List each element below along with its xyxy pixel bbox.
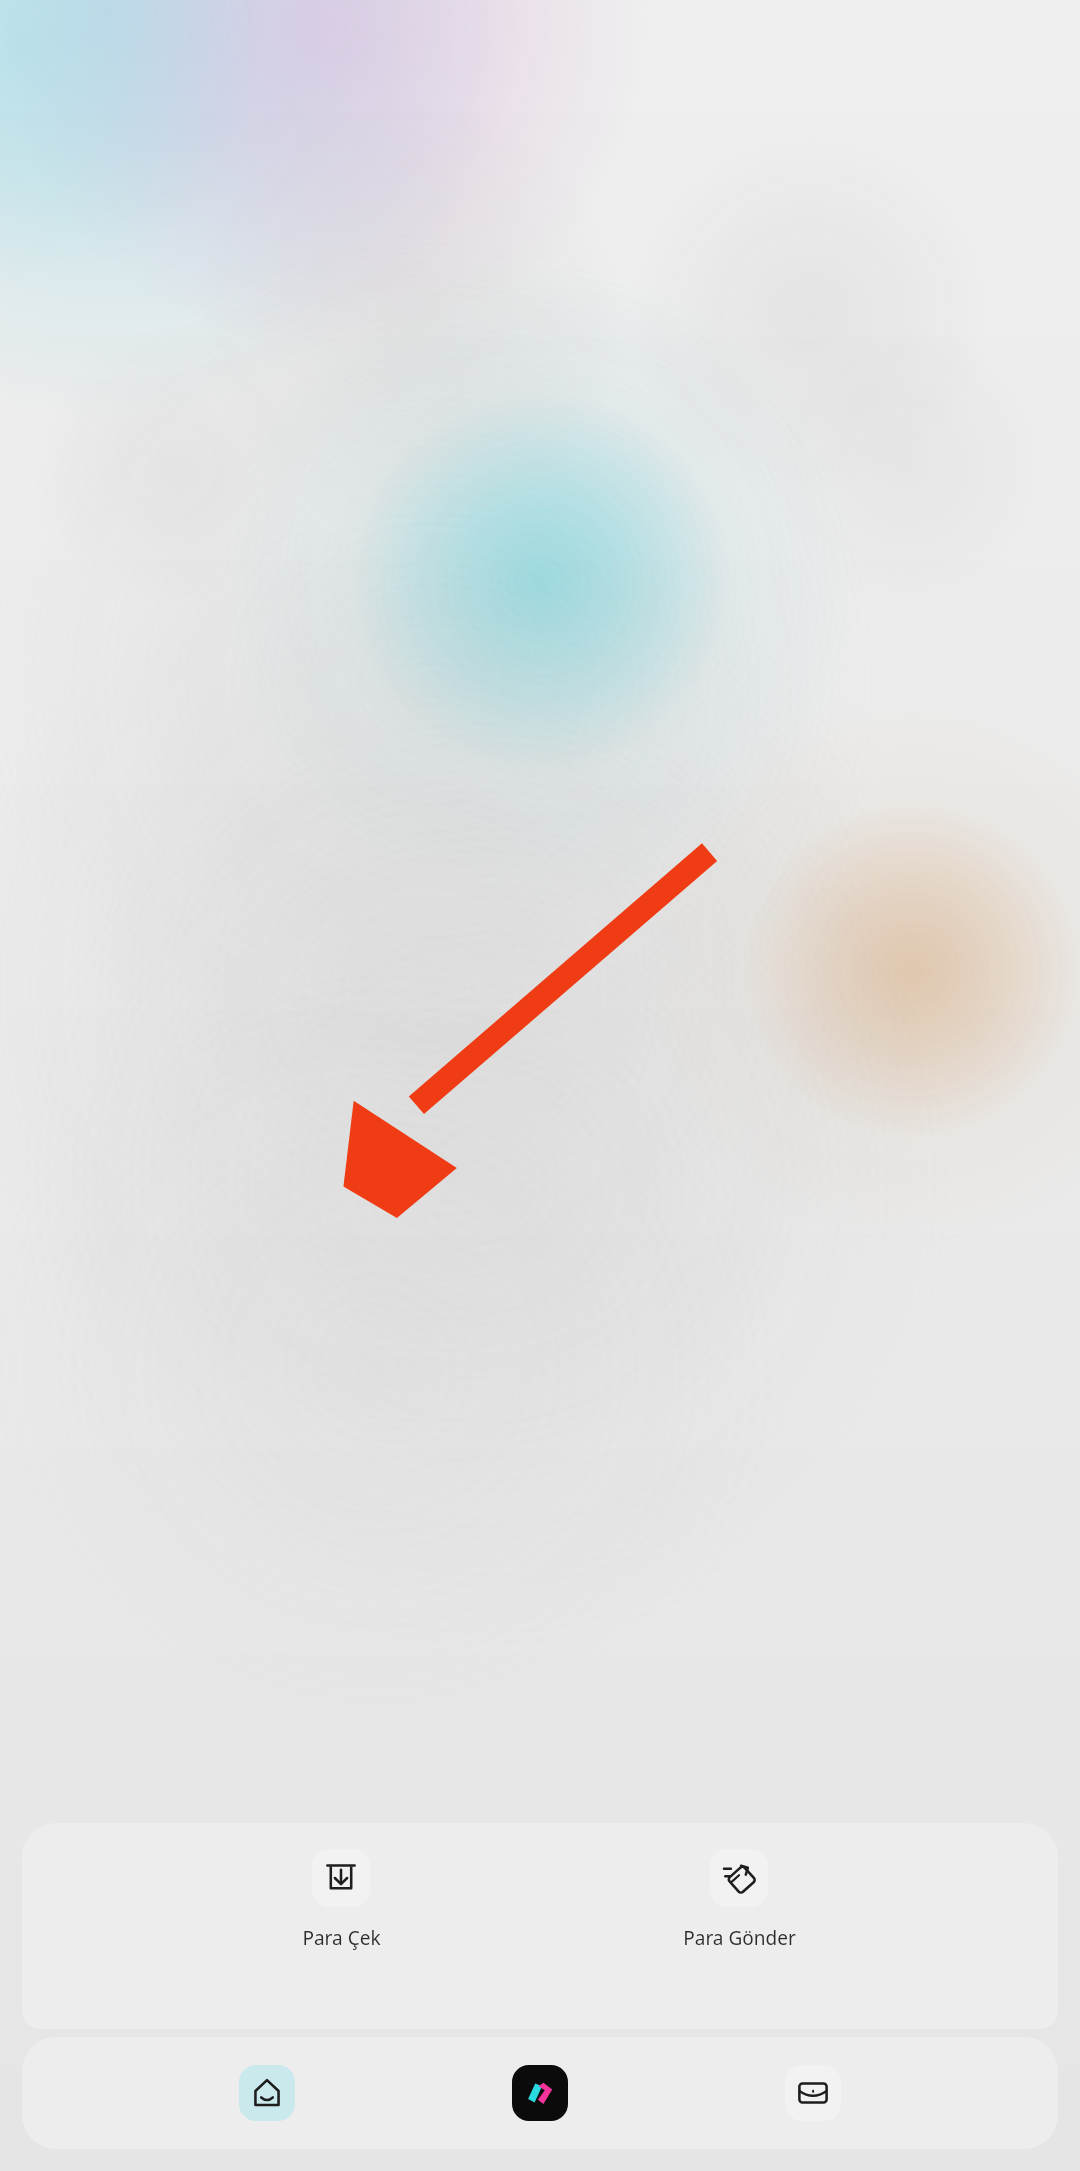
button[interactable]: Home: [239, 2065, 295, 2121]
staticText: Para Gönder: [683, 1925, 796, 1951]
button[interactable]: Para Gönder: [659, 1847, 819, 1953]
button[interactable]: Cards: [785, 2065, 841, 2121]
button[interactable]: Wallet app: [512, 2065, 568, 2121]
staticText: Para Çek: [302, 1925, 381, 1951]
button[interactable]: Para Çek: [261, 1847, 421, 1953]
